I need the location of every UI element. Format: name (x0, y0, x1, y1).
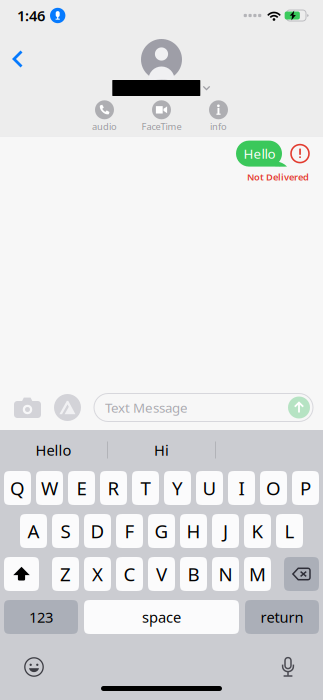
staticText: L (284, 519, 294, 543)
staticText: D (90, 519, 104, 543)
button[interactable]: Emoji (24, 657, 44, 677)
staticText: space (142, 607, 181, 627)
button[interactable]: Apps (41, 394, 81, 421)
button[interactable]: Dictation (281, 656, 295, 678)
staticText: return (260, 607, 303, 627)
staticText: audio (92, 120, 117, 133)
button[interactable]: L (276, 514, 303, 548)
button[interactable]: H (180, 514, 207, 548)
staticText: E (76, 476, 86, 500)
staticText: FaceTime (141, 120, 181, 133)
staticText: J (223, 519, 228, 543)
button[interactable]: Q (4, 471, 31, 505)
staticText: H (186, 519, 200, 543)
button[interactable]: Text Message (81, 393, 313, 421)
staticText: T (140, 476, 150, 500)
staticText: I (238, 476, 244, 500)
staticText: V (156, 562, 167, 586)
staticText: S (60, 519, 70, 543)
button[interactable]: B (180, 557, 207, 591)
button[interactable]: N (212, 557, 239, 591)
button[interactable]: Y (164, 471, 191, 505)
button[interactable]: Back (1, 42, 35, 76)
button[interactable]: K (244, 514, 271, 548)
staticText: X (92, 562, 103, 586)
button[interactable]: Z (52, 557, 79, 591)
button[interactable]: FaceTime (133, 102, 190, 131)
button[interactable]: S (52, 514, 79, 548)
staticText: 123 (29, 607, 53, 627)
button[interactable]: Shift (4, 557, 39, 591)
button[interactable]: Hi (108, 430, 215, 470)
staticText: Q (10, 476, 25, 500)
button[interactable]: return (245, 600, 319, 634)
staticText: 1:46 (17, 6, 45, 25)
staticText: M (249, 562, 266, 586)
staticText: G (154, 519, 168, 543)
button[interactable]: X (84, 557, 111, 591)
button[interactable]: info (190, 102, 247, 131)
button[interactable]: W (36, 471, 63, 505)
staticText: P (300, 476, 311, 500)
button[interactable]: 123 (4, 600, 78, 634)
staticText: Not Delivered (247, 171, 309, 183)
staticText: info (210, 120, 227, 133)
button[interactable]: G (148, 514, 175, 548)
staticText: K (251, 519, 263, 543)
button[interactable]: Camera (14, 397, 41, 418)
staticText: Z (60, 562, 71, 586)
button[interactable]: T (132, 471, 159, 505)
button[interactable]: C (116, 557, 143, 591)
button[interactable]: audio (76, 102, 133, 131)
button[interactable]: A (20, 514, 47, 548)
staticText: W (41, 476, 58, 500)
staticText: Text Message (105, 399, 188, 416)
button[interactable]: U (196, 471, 223, 505)
button[interactable]: I (228, 471, 255, 505)
button[interactable]: V (148, 557, 175, 591)
button[interactable]: space (84, 600, 239, 634)
staticText: C (123, 562, 135, 586)
button[interactable]: Hello (0, 430, 107, 470)
button[interactable]: J (212, 514, 239, 548)
staticText: Y (172, 476, 183, 500)
button[interactable]: M (244, 557, 271, 591)
button[interactable]: E (68, 471, 95, 505)
button[interactable]: O (260, 471, 287, 505)
staticText: Hello (243, 145, 275, 162)
staticText: F (124, 519, 134, 543)
staticText: O (266, 476, 281, 500)
staticText: N (218, 562, 232, 586)
button[interactable]: R (100, 471, 127, 505)
button[interactable]: Delete (284, 557, 319, 591)
button[interactable]: F (116, 514, 143, 548)
button[interactable]: D (84, 514, 111, 548)
staticText: Hello (35, 440, 71, 460)
staticText: U (202, 476, 216, 500)
staticText: R (107, 476, 119, 500)
staticText: B (187, 562, 199, 586)
staticText: A (27, 519, 39, 543)
button[interactable]: P (292, 471, 319, 505)
staticText: Hi (154, 440, 169, 460)
